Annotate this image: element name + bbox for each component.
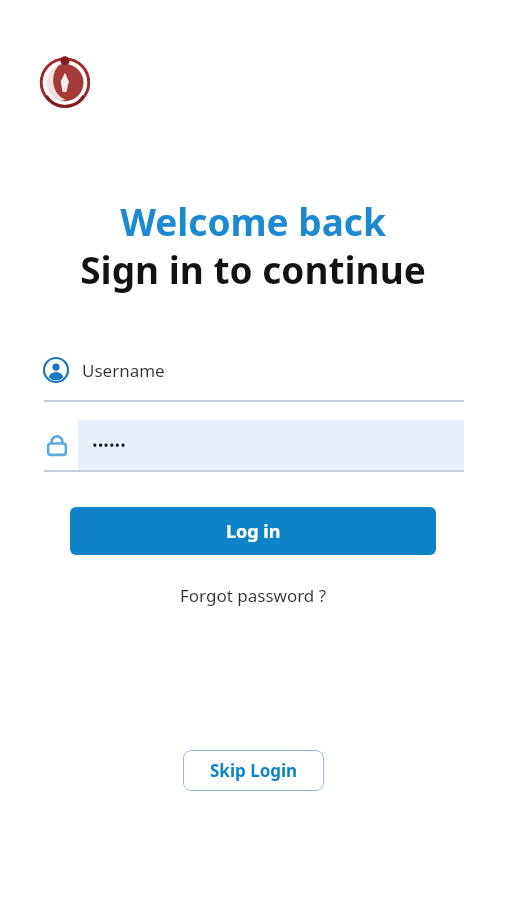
button[interactable]: Username — [44, 348, 464, 402]
button[interactable]: Forgot password ? — [168, 578, 339, 613]
staticText: Sign in to continue — [0, 244, 506, 294]
staticText: •••••• — [92, 435, 126, 455]
staticText: Forgot password ? — [180, 584, 327, 607]
staticText: Skip Login — [210, 759, 298, 782]
other: App logo — [38, 54, 92, 108]
button[interactable]: •••••• — [44, 420, 464, 472]
staticText: Username — [82, 359, 165, 382]
staticText: Welcome back — [0, 196, 506, 246]
button[interactable]: Log in — [70, 507, 436, 555]
button[interactable]: Skip Login — [183, 750, 324, 791]
staticText: Log in — [226, 519, 281, 544]
